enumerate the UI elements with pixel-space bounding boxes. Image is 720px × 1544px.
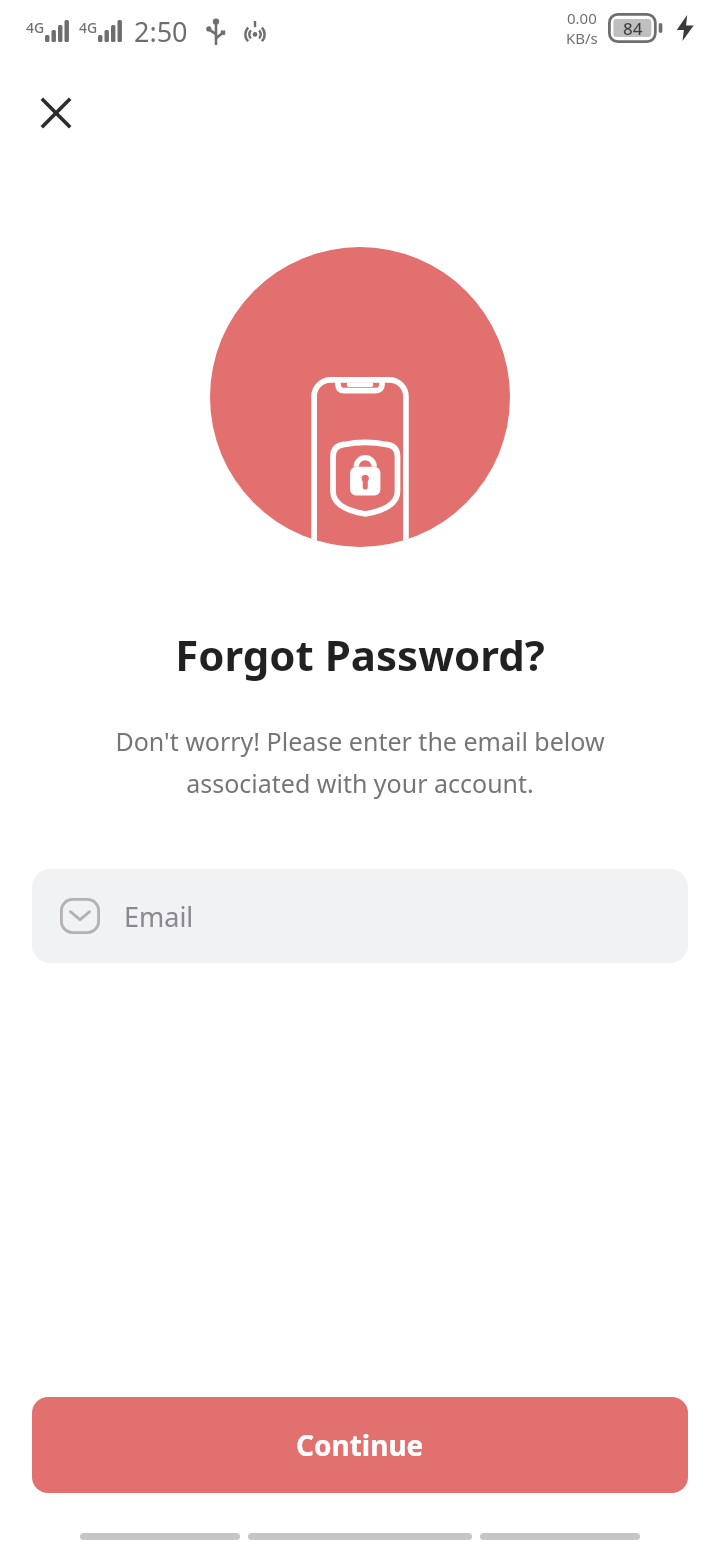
staticText: Email (124, 898, 194, 935)
button[interactable]: Close (22, 79, 90, 147)
staticText: KB/s (566, 28, 598, 48)
button[interactable]: Email (32, 869, 688, 963)
staticText: Don't worry! Please enter the email belo… (58, 724, 662, 800)
staticText: 4G (79, 18, 98, 37)
staticText: 2:50 (134, 13, 188, 50)
staticText: 84 (623, 17, 643, 40)
staticText: Forgot Password? (175, 626, 545, 683)
staticText: 0.00 (567, 8, 597, 28)
staticText: Continue (296, 1426, 424, 1464)
staticText: 4G (26, 18, 45, 37)
button[interactable]: Continue (32, 1397, 688, 1493)
